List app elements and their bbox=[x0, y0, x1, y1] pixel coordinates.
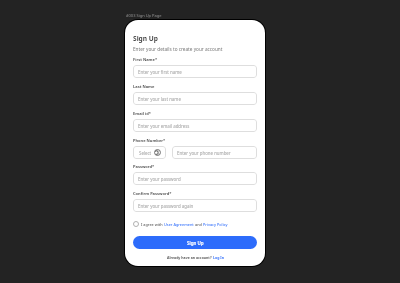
staticText: User Agreement bbox=[164, 222, 194, 227]
staticText: Enter your password bbox=[138, 176, 181, 182]
staticText: Last Name bbox=[133, 84, 155, 89]
staticText: Select bbox=[139, 150, 152, 156]
button[interactable]: Enter your password again bbox=[133, 199, 257, 212]
staticText: and bbox=[194, 222, 203, 227]
staticText: Enter your password again bbox=[138, 203, 194, 209]
staticText: Phone Number* bbox=[133, 138, 166, 143]
staticText: Enter your details to create your accoun… bbox=[133, 46, 223, 52]
staticText: Enter your last name bbox=[138, 96, 181, 102]
staticText: Already have an account? bbox=[167, 255, 213, 260]
staticText: Enter your email address bbox=[138, 123, 190, 129]
staticText: Enter your phone number bbox=[177, 150, 231, 156]
staticText: #003 Sign Up Page bbox=[126, 13, 162, 18]
button[interactable]: Enter your password bbox=[133, 172, 257, 185]
button[interactable]: Log In bbox=[213, 255, 224, 260]
button[interactable]: Sign Up bbox=[133, 236, 257, 249]
staticText: Confirm Password* bbox=[133, 191, 172, 196]
button[interactable]: Enter your email address bbox=[133, 119, 257, 132]
staticText: Password* bbox=[133, 164, 155, 169]
staticText: First Name* bbox=[133, 57, 158, 62]
staticText: I agree with bbox=[141, 222, 164, 227]
button[interactable]: Select bbox=[133, 146, 166, 159]
staticText: Enter your first name bbox=[138, 69, 182, 75]
staticText: Privacy Policy bbox=[203, 222, 228, 227]
button[interactable]: I agree with bbox=[133, 221, 228, 227]
other: Select country code bbox=[154, 149, 161, 156]
staticText: Sign Up bbox=[133, 34, 158, 43]
staticText: Email id* bbox=[133, 111, 151, 116]
button[interactable]: Enter your last name bbox=[133, 92, 257, 105]
button[interactable]: Enter your first name bbox=[133, 65, 257, 78]
button[interactable]: Enter your phone number bbox=[172, 146, 257, 159]
staticText: Sign Up bbox=[187, 240, 204, 246]
